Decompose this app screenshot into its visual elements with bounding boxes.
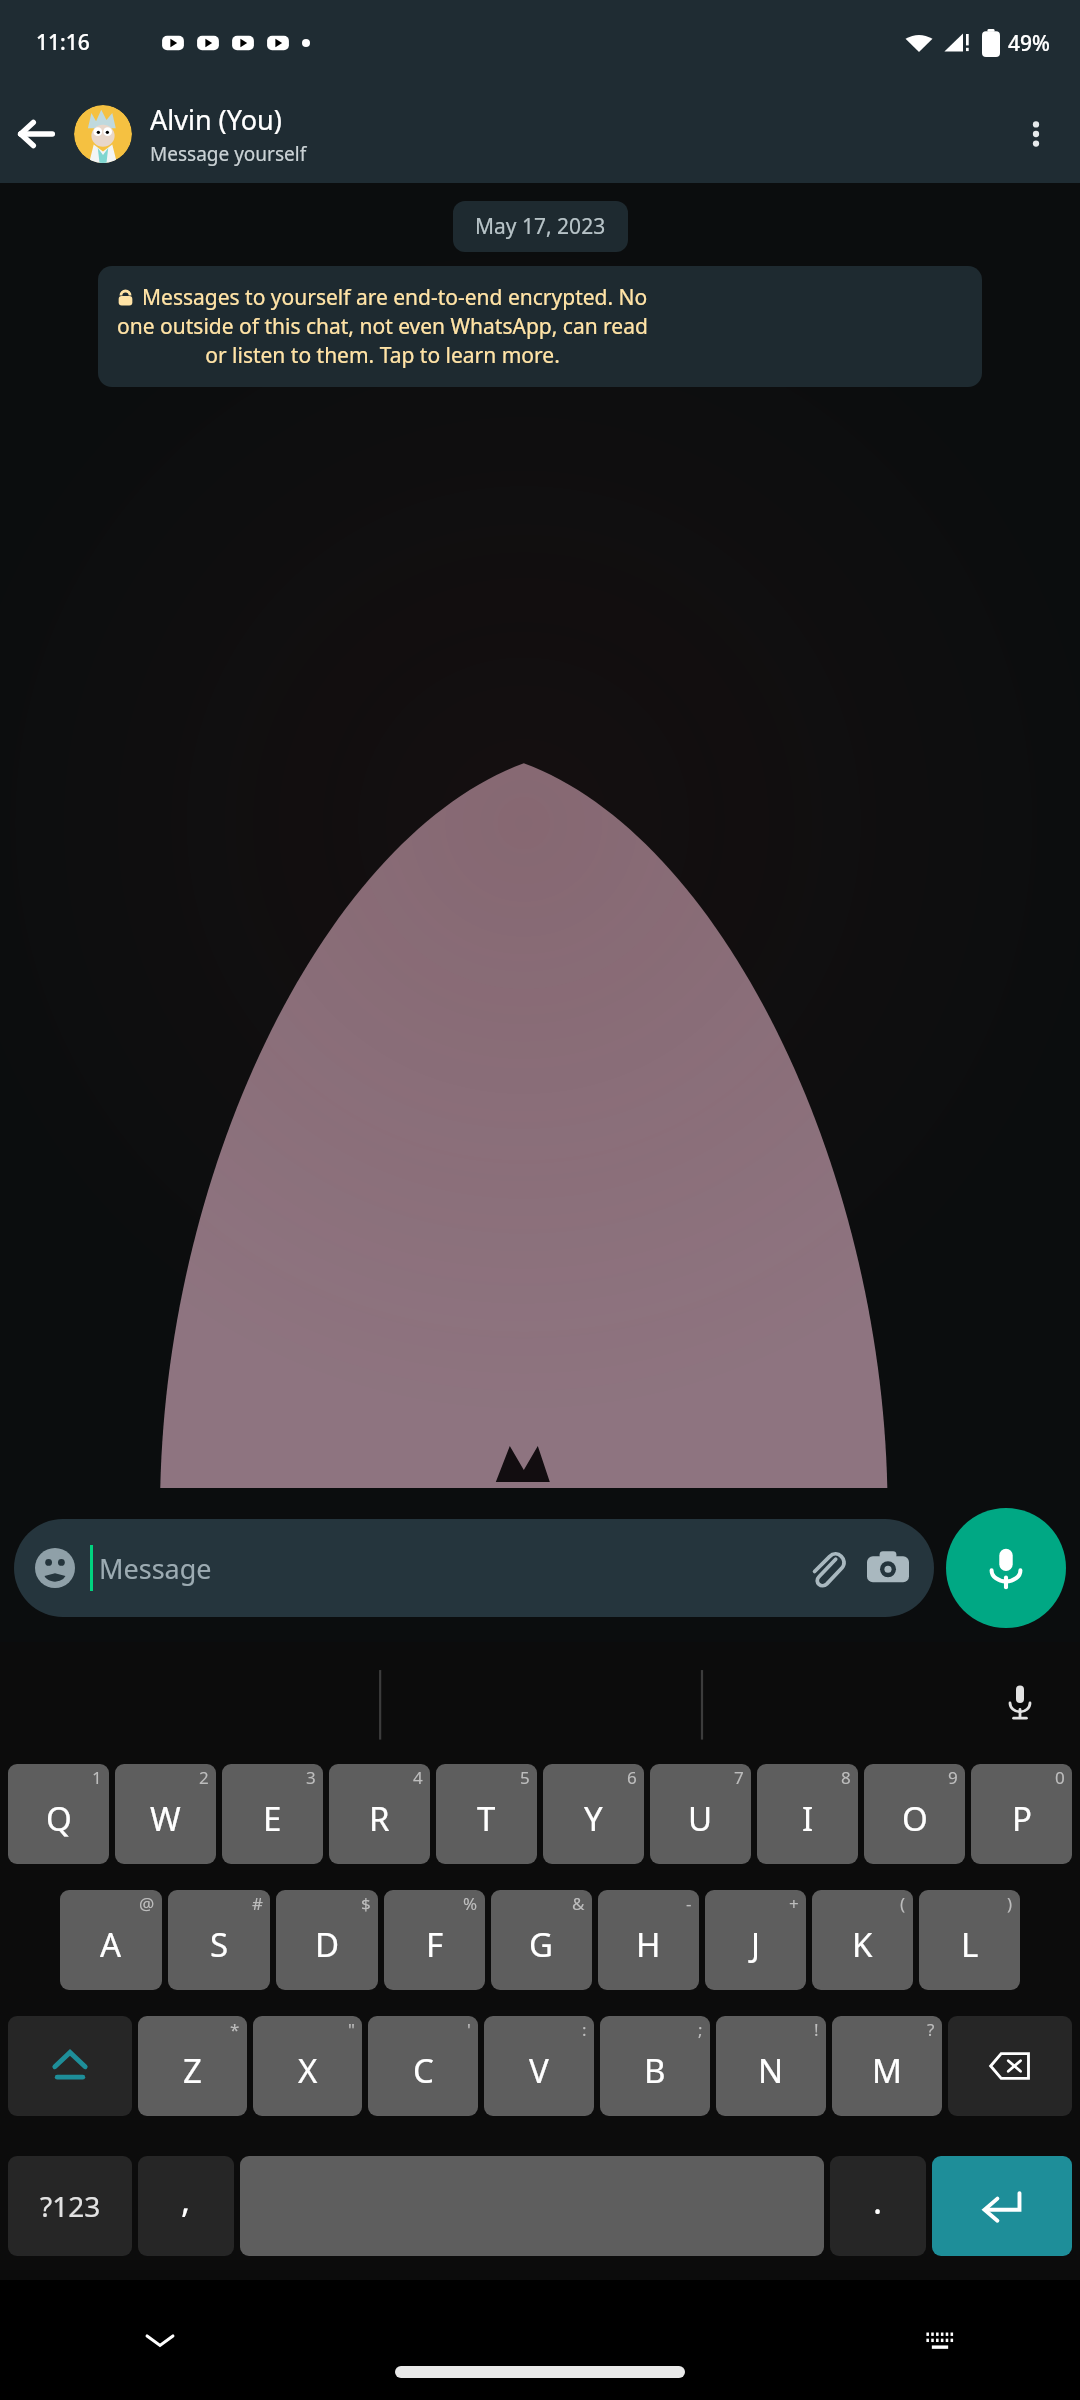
button[interactable]: Voice message [946,1508,1066,1628]
staticText: E [263,1796,282,1841]
staticText: " [348,2018,355,2041]
button[interactable]: M [832,2016,942,2116]
button[interactable]: R [329,1764,430,1864]
staticText: K [852,1922,873,1967]
staticText: one outside of this chat, not even Whats… [117,312,648,341]
staticText: % [463,1892,478,1915]
button[interactable]: D [276,1890,378,1990]
staticText: May 17, 2023 [475,212,606,241]
staticText: P [1012,1796,1032,1841]
staticText: 3 [306,1766,316,1789]
button[interactable]: S [168,1890,270,1990]
button[interactable]: X [253,2016,362,2116]
staticText: ( [900,1892,906,1915]
staticText: I [802,1796,814,1841]
button[interactable]: Camera [862,1542,914,1594]
staticText: Message yourself [150,141,307,167]
staticText: A [100,1922,122,1967]
button[interactable]: Back [0,98,72,170]
button[interactable]: Y [543,1764,644,1864]
button[interactable]: Alvin (You) [150,101,992,167]
button[interactable]: N [716,2016,826,2116]
staticText: T [477,1796,496,1841]
staticText: ?123 [40,2187,101,2225]
staticText: B [644,2048,666,2093]
staticText: or listen to them. Tap to learn more. [205,341,560,370]
button[interactable]: E [222,1764,323,1864]
staticText: L [961,1922,979,1967]
button[interactable]: Shift [8,2016,132,2116]
staticText: C [413,2048,434,2093]
button[interactable]: G [491,1890,592,1990]
button[interactable]: W [115,1764,216,1864]
staticText: ? [927,2018,935,2041]
staticText: Q [46,1796,72,1841]
button[interactable]: K [812,1890,913,1990]
staticText: U [688,1796,713,1841]
staticText: 11:16 [36,28,90,57]
staticText: , [181,2177,191,2223]
staticText: * [230,2018,240,2041]
button[interactable]: A [60,1890,162,1990]
staticText: 4 [413,1766,423,1789]
button[interactable]: U [650,1764,751,1864]
staticText: X [298,2048,318,2093]
staticText: 8 [841,1766,851,1789]
staticText: F [426,1922,444,1967]
button[interactable]: Backspace [948,2016,1072,2116]
staticText: J [751,1922,761,1967]
button[interactable]: F [384,1890,485,1990]
staticText: 0 [1055,1766,1065,1789]
staticText: W [150,1796,181,1841]
button[interactable]: May 17, 2023 [453,201,628,252]
staticText: ' [467,2018,471,2041]
staticText: Alvin (You) [150,101,282,138]
button[interactable]: Q [8,1764,109,1864]
button[interactable]: B [600,2016,710,2116]
button[interactable]: J [705,1890,806,1990]
button[interactable]: T [436,1764,537,1864]
staticText: H [636,1922,661,1967]
staticText: R [369,1796,390,1841]
button[interactable]: L [919,1890,1020,1990]
button[interactable]: C [368,2016,478,2116]
button[interactable]: Enter [932,2156,1072,2256]
button[interactable]: Hide keyboard [130,2310,190,2370]
staticText: D [315,1922,340,1967]
staticText: 7 [734,1766,744,1789]
staticText: Message [99,1550,800,1587]
staticText: 49% [1008,29,1050,58]
staticText: & [572,1892,585,1915]
staticText: $ [361,1892,371,1915]
staticText: Messages to yourself are end-to-end encr… [142,283,648,312]
staticText: @ [139,1892,155,1915]
button[interactable]: Emoji [14,1519,934,1617]
button[interactable]: I [757,1764,858,1864]
staticText: 9 [948,1766,958,1789]
staticText: Y [584,1796,603,1841]
button[interactable]: More options [992,90,1080,178]
button[interactable]: Messages to yourself are end-to-end encr… [98,266,982,387]
button[interactable]: Emoji [34,1547,76,1589]
staticText: G [529,1922,554,1967]
button[interactable]: . [830,2156,926,2256]
button[interactable]: ?123 [8,2156,132,2256]
staticText: 1 [92,1766,102,1789]
button[interactable]: H [598,1890,699,1990]
button[interactable]: Attach [800,1542,852,1594]
button[interactable]: , [138,2156,234,2256]
button[interactable]: P [971,1764,1072,1864]
staticText: ; [698,2018,703,2041]
staticText: 2 [199,1766,209,1789]
button[interactable]: Voice input [992,1675,1048,1731]
button[interactable]: O [864,1764,965,1864]
staticText: ! [814,2018,819,2041]
button[interactable]: V [484,2016,594,2116]
button[interactable]: Z [138,2016,247,2116]
staticText: + [789,1892,799,1915]
staticText: ) [1007,1892,1013,1915]
staticText: Z [183,2048,202,2093]
staticText: M [872,2048,902,2093]
button[interactable]: Switch keyboard [910,2310,970,2370]
